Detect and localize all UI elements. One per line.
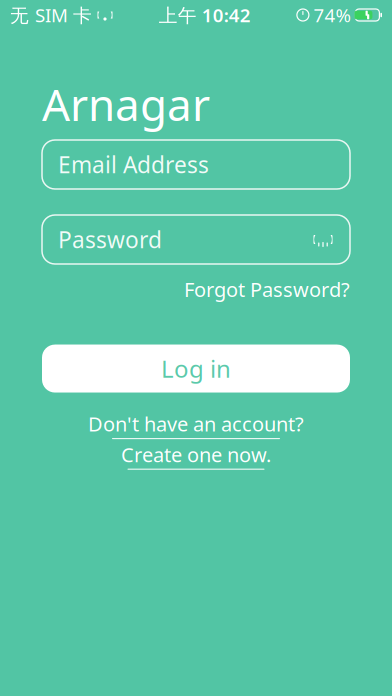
button[interactable]: Password xyxy=(42,215,350,264)
button[interactable]: Log in xyxy=(42,345,350,393)
staticText: 无 SIM 卡 xyxy=(10,3,92,27)
staticText: Arnagar xyxy=(42,75,210,133)
button[interactable]: Email Address xyxy=(42,140,350,189)
staticText: Password xyxy=(58,224,162,254)
staticText: Don't have an account? xyxy=(88,411,304,437)
staticText: Email Address xyxy=(58,149,209,179)
staticText: Log in xyxy=(161,353,231,384)
button[interactable]: Forgot Password? xyxy=(184,273,350,306)
staticText: Create one now. xyxy=(121,441,271,468)
staticText: 上午 10:42 xyxy=(159,3,251,27)
staticText: Forgot Password? xyxy=(184,276,350,303)
button[interactable]: Don't have an account? xyxy=(88,411,304,470)
staticText: 74% xyxy=(313,3,351,27)
